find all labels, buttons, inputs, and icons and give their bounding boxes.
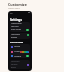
staticText: Personalize <box>10 41 24 44</box>
button[interactable]: Colour swatch <box>28 51 29 53</box>
button[interactable]: Theme <box>10 44 30 49</box>
button[interactable]: Region <box>10 36 30 39</box>
button[interactable]: Appearance <box>10 22 30 25</box>
button[interactable]: Shapes <box>10 63 30 66</box>
staticText: Customize <box>8 2 27 7</box>
staticText: Language <box>11 33 20 36</box>
staticText: Appearance <box>11 22 22 25</box>
staticText: Make it yours <box>8 7 20 10</box>
staticText: Theme <box>14 45 21 48</box>
button[interactable]: Widgets <box>10 54 30 58</box>
staticText: Reset <box>11 66 16 69</box>
button[interactable]: Text size <box>10 25 30 28</box>
button[interactable]: Reset <box>10 66 30 69</box>
staticText: Accent <box>14 50 20 53</box>
staticText: Settings <box>10 18 22 22</box>
staticText: Shapes <box>11 63 18 66</box>
staticText: Text size <box>11 25 19 28</box>
button[interactable]: Dark mode <box>10 28 30 31</box>
button[interactable]: Language <box>10 33 30 36</box>
button[interactable]: Accent <box>10 49 30 54</box>
staticText: Region <box>11 36 18 39</box>
staticText: Dark mode <box>11 28 21 31</box>
staticText: Icon pack <box>11 60 20 63</box>
staticText: Widgets <box>14 55 22 58</box>
staticText: 9:41 <box>10 12 14 14</box>
button[interactable]: Icon pack <box>10 60 30 63</box>
